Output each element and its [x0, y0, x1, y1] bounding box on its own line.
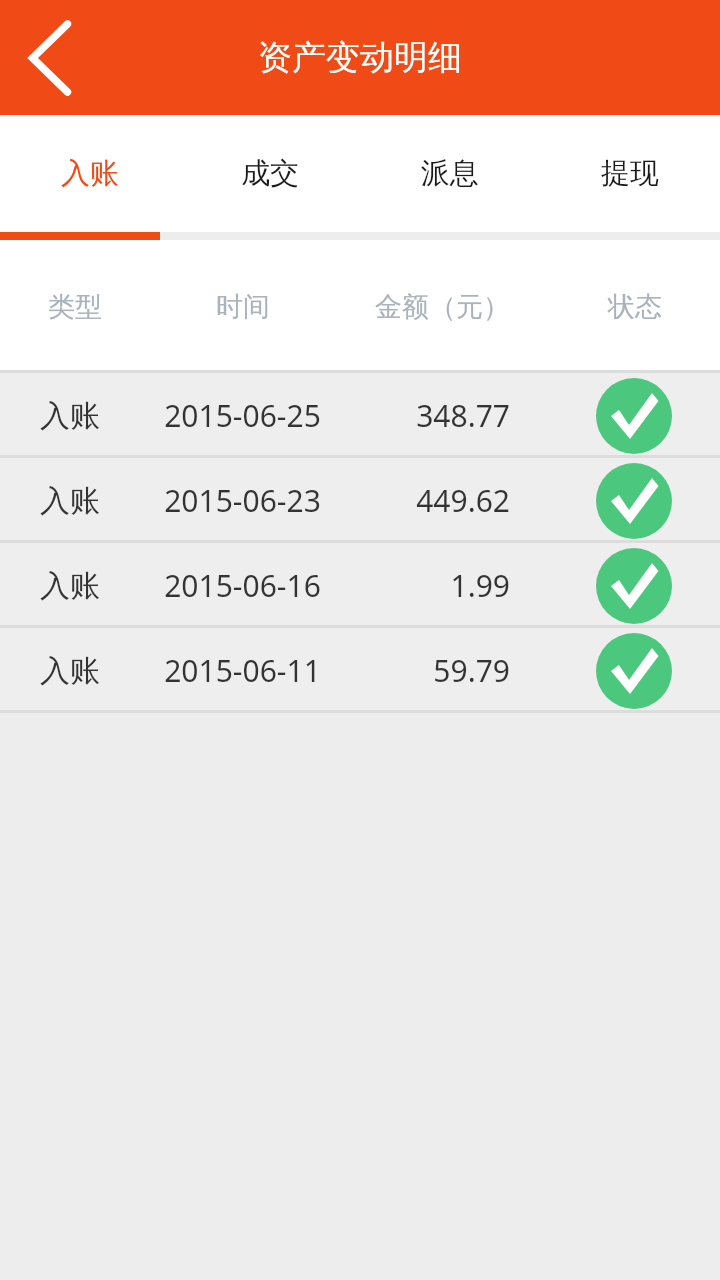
staticText: 成交 [241, 155, 299, 192]
button[interactable]: 提现 [540, 115, 720, 232]
staticText: 入账 [40, 482, 100, 520]
button[interactable]: 入账 [0, 543, 720, 628]
button[interactable]: 入账 [0, 373, 720, 458]
staticText: 入账 [40, 652, 100, 690]
other: Completed [596, 463, 672, 539]
staticText: 入账 [61, 155, 119, 192]
staticText: 类型 [48, 290, 102, 324]
staticText: 1.99 [450, 565, 510, 606]
staticText: 金额（元） [375, 290, 510, 324]
other: Completed [596, 548, 672, 624]
staticText: 资产变动明细 [258, 36, 462, 79]
button[interactable]: 入账 [0, 458, 720, 543]
staticText: 2015-06-11 [164, 650, 321, 691]
button[interactable]: Back [0, 0, 100, 115]
staticText: 入账 [40, 397, 100, 435]
button[interactable]: 入账 [0, 115, 180, 232]
staticText: 2015-06-25 [164, 395, 321, 436]
staticText: 348.77 [416, 395, 510, 436]
staticText: 2015-06-23 [164, 480, 321, 521]
staticText: 派息 [421, 155, 479, 192]
staticText: 状态 [608, 290, 662, 324]
staticText: 449.62 [416, 480, 510, 521]
staticText: 59.79 [433, 650, 510, 691]
staticText: 时间 [216, 290, 270, 324]
other: Completed [596, 378, 672, 454]
button[interactable]: 派息 [360, 115, 540, 232]
staticText: 2015-06-16 [164, 565, 321, 606]
staticText: 提现 [601, 155, 659, 192]
other: Completed [596, 633, 672, 709]
button[interactable]: 成交 [180, 115, 360, 232]
button[interactable]: 入账 [0, 628, 720, 713]
staticText: 入账 [40, 567, 100, 605]
